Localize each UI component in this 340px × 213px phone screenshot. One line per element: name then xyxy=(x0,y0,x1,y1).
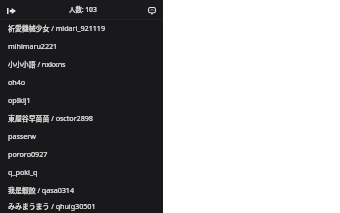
button[interactable]: 祈愛機械少女 / midari_921119 xyxy=(0,19,163,37)
button[interactable]: mihimaru2221 xyxy=(0,37,163,55)
button[interactable]: opIkij1 xyxy=(0,91,163,109)
staticText: 我是蝦餃 / qasa0314 xyxy=(8,185,75,195)
staticText: opIkij1 xyxy=(8,95,31,105)
button[interactable]: passerw xyxy=(0,127,163,145)
staticText: pororo0927 xyxy=(8,149,48,159)
staticText: 小小小語 / nxkxns xyxy=(8,59,66,69)
staticText: oh4o xyxy=(8,77,26,87)
button[interactable]: みみまうまう / qhuig30501 xyxy=(0,199,163,212)
staticText: passerw xyxy=(8,131,36,141)
button[interactable]: 我是蝦餃 / qasa0314 xyxy=(0,181,163,199)
button[interactable]: Chat xyxy=(145,3,159,17)
button[interactable]: oh4o xyxy=(0,73,163,91)
staticText: みみまうまう / qhuig30501 xyxy=(8,201,96,211)
staticText: mihimaru2221 xyxy=(8,41,58,51)
button[interactable]: q_poki_q xyxy=(0,163,163,181)
staticText: q_poki_q xyxy=(8,167,38,177)
staticText: 人数: 103 xyxy=(69,5,97,14)
staticText: 東屋谷早苗苗 / osctor2898 xyxy=(8,113,93,123)
button[interactable]: 東屋谷早苗苗 / osctor2898 xyxy=(0,109,163,127)
button[interactable]: 小小小語 / nxkxns xyxy=(0,55,163,73)
button[interactable]: pororo0927 xyxy=(0,145,163,163)
button[interactable]: Leave room xyxy=(3,2,20,19)
staticText: 祈愛機械少女 / midari_921119 xyxy=(8,23,105,33)
